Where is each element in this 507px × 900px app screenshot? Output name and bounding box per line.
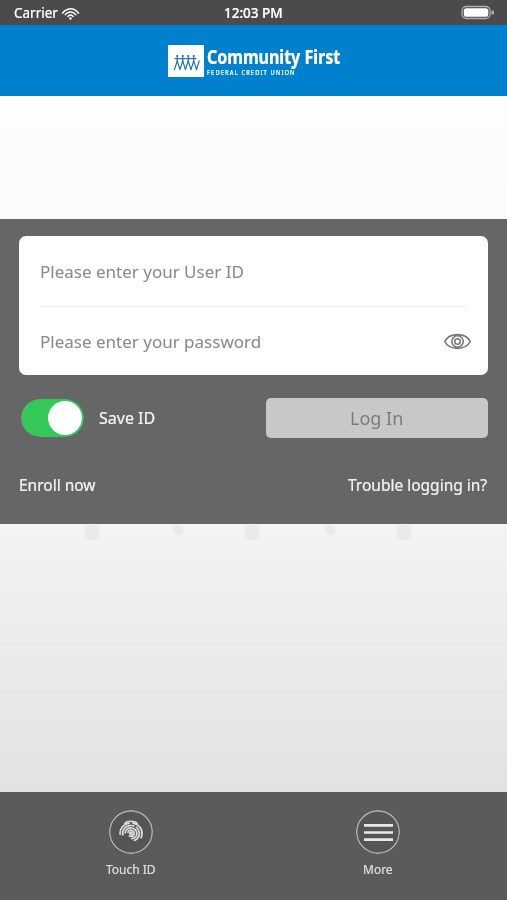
staticText: FEDERAL CREDIT UNION — [207, 67, 296, 77]
staticText: 12:03 PM — [224, 4, 283, 22]
staticText: More — [363, 861, 393, 877]
staticText: Please enter your User ID — [40, 260, 244, 283]
staticText: Carrier — [14, 4, 58, 22]
staticText: Save ID — [99, 407, 156, 429]
button[interactable]: Save ID toggle — [21, 399, 84, 437]
button[interactable]: Please enter your password — [19, 307, 488, 375]
button[interactable]: Please enter your User ID — [19, 236, 488, 306]
button[interactable]: Log In — [266, 398, 488, 438]
button[interactable]: Trouble logging in? — [348, 474, 488, 495]
staticText: Touch ID — [106, 861, 156, 877]
button[interactable]: More — [332, 792, 424, 887]
button[interactable]: Touch ID — [82, 792, 180, 887]
staticText: Enroll now — [19, 474, 96, 495]
button[interactable]: Enroll now — [19, 474, 96, 495]
staticText: Log In — [350, 406, 404, 431]
button[interactable]: Show password — [440, 324, 474, 358]
staticText: Please enter your password — [40, 330, 262, 353]
staticText: Community First — [207, 43, 340, 70]
staticText: Trouble logging in? — [348, 474, 488, 495]
